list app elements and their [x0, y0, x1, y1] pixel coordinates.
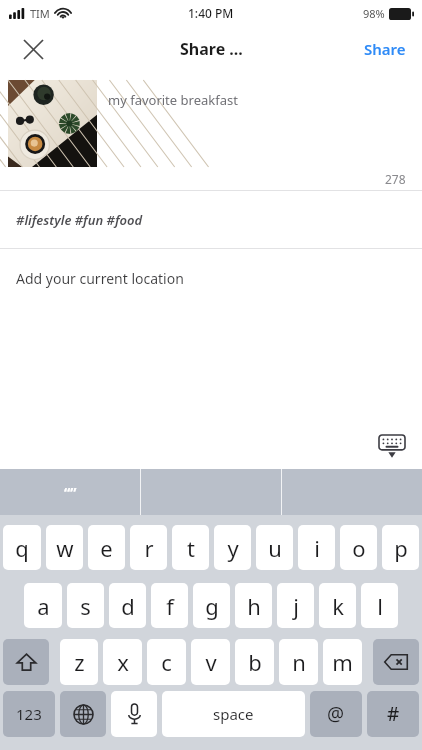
button[interactable]: x	[103, 639, 142, 685]
button[interactable]: Shift	[3, 639, 49, 685]
staticText: space	[213, 704, 254, 724]
staticText: j	[293, 591, 299, 621]
button[interactable]: Dictate	[111, 691, 157, 737]
staticText: y	[227, 533, 239, 563]
button[interactable]: “”	[0, 469, 140, 515]
staticText: b	[248, 647, 262, 677]
staticText: Share ...	[180, 38, 243, 60]
staticText: q	[15, 533, 29, 563]
staticText: Add your current location	[16, 269, 184, 288]
button[interactable]: #lifestyle #fun #food	[0, 191, 422, 248]
staticText: k	[332, 591, 344, 621]
button[interactable]: Close	[16, 32, 50, 66]
staticText: w	[56, 533, 74, 563]
button[interactable]: w	[46, 525, 83, 570]
button[interactable]: i	[298, 525, 335, 570]
staticText: 98%	[363, 6, 385, 21]
button[interactable]: k	[319, 583, 356, 628]
button[interactable]: s	[67, 583, 104, 628]
staticText: TIM	[30, 6, 50, 21]
button[interactable]: Backspace	[373, 639, 419, 685]
staticText: my favorite breakfast	[108, 91, 238, 109]
staticText: t	[187, 533, 195, 563]
staticText: “”	[64, 483, 77, 502]
staticText: i	[314, 533, 320, 563]
staticText: d	[121, 591, 135, 621]
button[interactable]: f	[151, 583, 188, 628]
staticText: s	[80, 591, 91, 621]
staticText: r	[144, 533, 154, 563]
button[interactable]: r	[130, 525, 167, 570]
button[interactable]: t	[172, 525, 209, 570]
button[interactable]: #	[367, 691, 419, 737]
button[interactable]: j	[277, 583, 314, 628]
button[interactable]: q	[3, 525, 41, 570]
staticText: v	[205, 647, 217, 677]
button[interactable]: o	[340, 525, 377, 570]
button[interactable]: p	[382, 525, 419, 570]
staticText: 278	[385, 171, 406, 187]
button[interactable]: b	[235, 639, 274, 685]
staticText: p	[394, 533, 408, 563]
button[interactable]: a	[24, 583, 62, 628]
staticText: @	[327, 701, 345, 727]
staticText: l	[377, 591, 383, 621]
staticText: o	[352, 533, 366, 563]
button[interactable]: g	[193, 583, 230, 628]
button[interactable]: v	[191, 639, 230, 685]
button[interactable]: Change keyboard language	[60, 691, 106, 737]
staticText: Share	[364, 39, 406, 59]
button[interactable]: m	[323, 639, 362, 685]
staticText: 123	[16, 704, 42, 724]
button[interactable]: h	[235, 583, 272, 628]
button[interactable]: Add your current location	[0, 249, 422, 307]
button[interactable]: y	[214, 525, 251, 570]
staticText: u	[268, 533, 282, 563]
button[interactable]: d	[109, 583, 146, 628]
button[interactable]: n	[279, 639, 318, 685]
button[interactable]: c	[147, 639, 186, 685]
staticText: z	[74, 647, 85, 677]
button[interactable]: 123	[3, 691, 55, 737]
staticText: f	[166, 591, 174, 621]
button[interactable]: z	[60, 639, 98, 685]
button[interactable]: space	[162, 691, 305, 737]
staticText: #	[387, 701, 400, 727]
button[interactable]: e	[88, 525, 125, 570]
button[interactable]: @	[310, 691, 362, 737]
button[interactable]: Share	[360, 33, 410, 65]
staticText: n	[292, 647, 306, 677]
staticText: e	[100, 533, 113, 563]
button[interactable]: u	[256, 525, 293, 570]
button[interactable]: Hide keyboard	[376, 431, 408, 463]
staticText: h	[247, 591, 261, 621]
staticText: 1:40 PM	[188, 5, 234, 21]
button[interactable]: l	[361, 583, 398, 628]
button[interactable]	[8, 80, 97, 167]
staticText: x	[117, 647, 129, 677]
staticText: g	[205, 591, 219, 621]
staticText: c	[161, 647, 172, 677]
staticText: m	[332, 647, 353, 677]
staticText: #lifestyle #fun #food	[16, 211, 143, 229]
staticText: a	[37, 591, 50, 621]
